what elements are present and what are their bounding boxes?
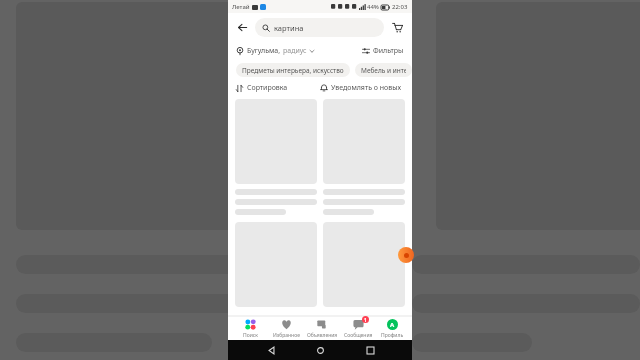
- button[interactable]: [323, 222, 405, 307]
- staticText: Сортировка: [247, 83, 288, 93]
- staticText: Сообщения: [344, 332, 373, 339]
- staticText: Объявления: [307, 332, 338, 339]
- staticText: Летай: [232, 3, 250, 11]
- staticText: картина: [274, 23, 304, 33]
- staticText: Предметы интерьера, искусство: [242, 66, 344, 75]
- staticText: радиус: [283, 46, 307, 56]
- button[interactable]: Добавить объявление: [398, 247, 414, 263]
- button[interactable]: Сортировка: [236, 83, 288, 93]
- button[interactable]: А: [376, 317, 408, 339]
- button[interactable]: Корзина: [390, 20, 405, 35]
- staticText: Бугульма,: [247, 46, 281, 56]
- staticText: Фильтры: [373, 46, 404, 56]
- button[interactable]: Объявления: [304, 317, 340, 339]
- staticText: Поиск: [243, 332, 258, 339]
- staticText: 44%: [367, 3, 379, 11]
- button[interactable]: 1: [340, 317, 376, 339]
- button[interactable]: Избранное: [268, 317, 304, 339]
- button[interactable]: Поиск: [232, 317, 268, 339]
- button[interactable]: Уведомлять о новых: [320, 83, 404, 93]
- button[interactable]: Предметы интерьера, искусство: [236, 63, 350, 77]
- button[interactable]: Мебель и интерьер: [355, 63, 412, 77]
- button[interactable]: Recents: [363, 343, 377, 357]
- button[interactable]: Back: [264, 343, 278, 357]
- staticText: 1: [364, 317, 367, 323]
- staticText: Профиль: [381, 332, 404, 339]
- button[interactable]: Home: [313, 343, 327, 357]
- button[interactable]: Бугульма,: [236, 46, 315, 56]
- button[interactable]: Фильтры: [362, 46, 404, 56]
- staticText: А: [390, 321, 395, 329]
- button[interactable]: Назад: [235, 20, 250, 35]
- button[interactable]: [235, 99, 317, 215]
- staticText: Уведомлять о новых: [331, 83, 402, 93]
- staticText: 22:03: [392, 3, 408, 11]
- staticText: Избранное: [273, 332, 300, 339]
- button[interactable]: картина: [255, 18, 384, 37]
- staticText: Мебель и интерьер: [361, 66, 406, 75]
- button[interactable]: [323, 99, 405, 215]
